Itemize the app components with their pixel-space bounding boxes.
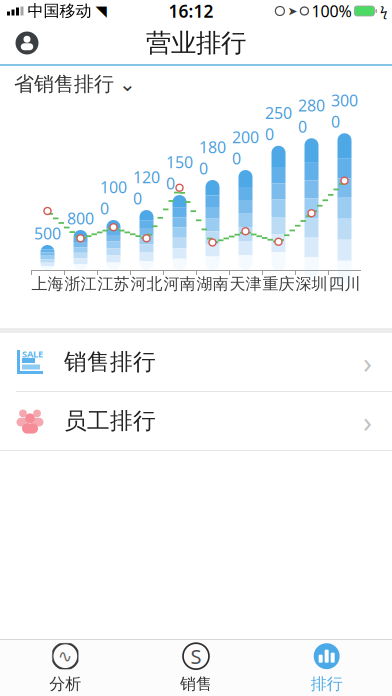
- staticText: 1000: [100, 176, 127, 219]
- staticText: 深圳: [295, 274, 327, 294]
- staticText: 省销售排行: [14, 72, 114, 96]
- button[interactable]: Profile: [6, 22, 48, 64]
- staticText: ➤: [287, 4, 297, 18]
- staticText: 3000: [331, 90, 358, 132]
- staticText: 1200: [133, 166, 160, 209]
- staticText: 2000: [232, 126, 259, 169]
- staticText: ◥: [95, 3, 106, 19]
- staticText: S: [190, 643, 201, 669]
- staticText: 分析: [49, 674, 81, 694]
- staticText: 1800: [199, 136, 226, 179]
- staticText: 500: [34, 223, 61, 244]
- staticText: 员工排行: [64, 407, 156, 435]
- button[interactable]: 排行: [261, 641, 392, 695]
- staticText: 16:12: [168, 0, 213, 22]
- staticText: 营业排行: [146, 27, 246, 58]
- button[interactable]: 员工排行: [0, 392, 392, 450]
- staticText: ›: [363, 401, 372, 440]
- button[interactable]: SALE: [0, 333, 392, 391]
- staticText: 天津: [229, 274, 261, 294]
- staticText: ⌄: [119, 73, 136, 95]
- staticText: ϟ: [380, 2, 387, 20]
- staticText: 中国移动: [27, 1, 91, 21]
- staticText: 销售: [180, 674, 212, 694]
- staticText: 2500: [265, 102, 292, 145]
- staticText: 800: [67, 208, 94, 229]
- staticText: 河南: [163, 274, 195, 294]
- button[interactable]: 省销售排行: [0, 66, 392, 102]
- staticText: ∿: [58, 646, 73, 666]
- staticText: 四川: [328, 274, 360, 294]
- staticText: 销售排行: [64, 348, 156, 376]
- staticText: 重庆: [262, 274, 294, 294]
- staticText: ›: [363, 342, 372, 381]
- staticText: 浙江: [64, 274, 96, 294]
- button[interactable]: ∿: [0, 641, 131, 695]
- staticText: 排行: [311, 674, 343, 694]
- staticText: SALE: [22, 348, 43, 360]
- staticText: 100%: [311, 0, 351, 22]
- staticText: 河北: [130, 274, 162, 294]
- staticText: 1500: [166, 151, 193, 194]
- button[interactable]: S: [131, 641, 261, 695]
- staticText: 2800: [298, 95, 325, 137]
- staticText: 江苏: [97, 274, 129, 294]
- staticText: 湖南: [196, 274, 228, 294]
- staticText: 上海: [31, 274, 63, 294]
